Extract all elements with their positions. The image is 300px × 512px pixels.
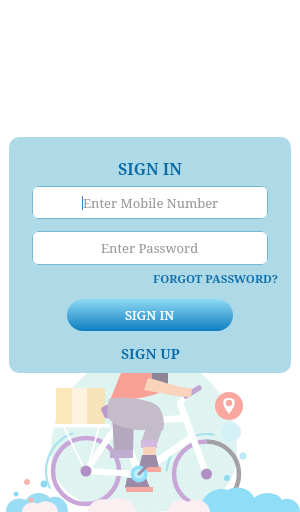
staticText: Enter Mobile Number [83, 194, 219, 212]
button[interactable]: SIGN IN [67, 299, 233, 331]
staticText: SIGN UP [121, 344, 180, 363]
staticText: SIGN IN [118, 158, 182, 180]
staticText: Enter Password [101, 239, 199, 257]
button[interactable]: Enter Mobile Number [32, 186, 268, 219]
staticText: FORGOT PASSWORD? [153, 271, 279, 287]
button[interactable]: FORGOT PASSWORD? [153, 271, 279, 287]
button[interactable]: Enter Password [32, 231, 268, 265]
button[interactable]: SIGN UP [121, 344, 180, 363]
staticText: SIGN IN [125, 306, 175, 324]
